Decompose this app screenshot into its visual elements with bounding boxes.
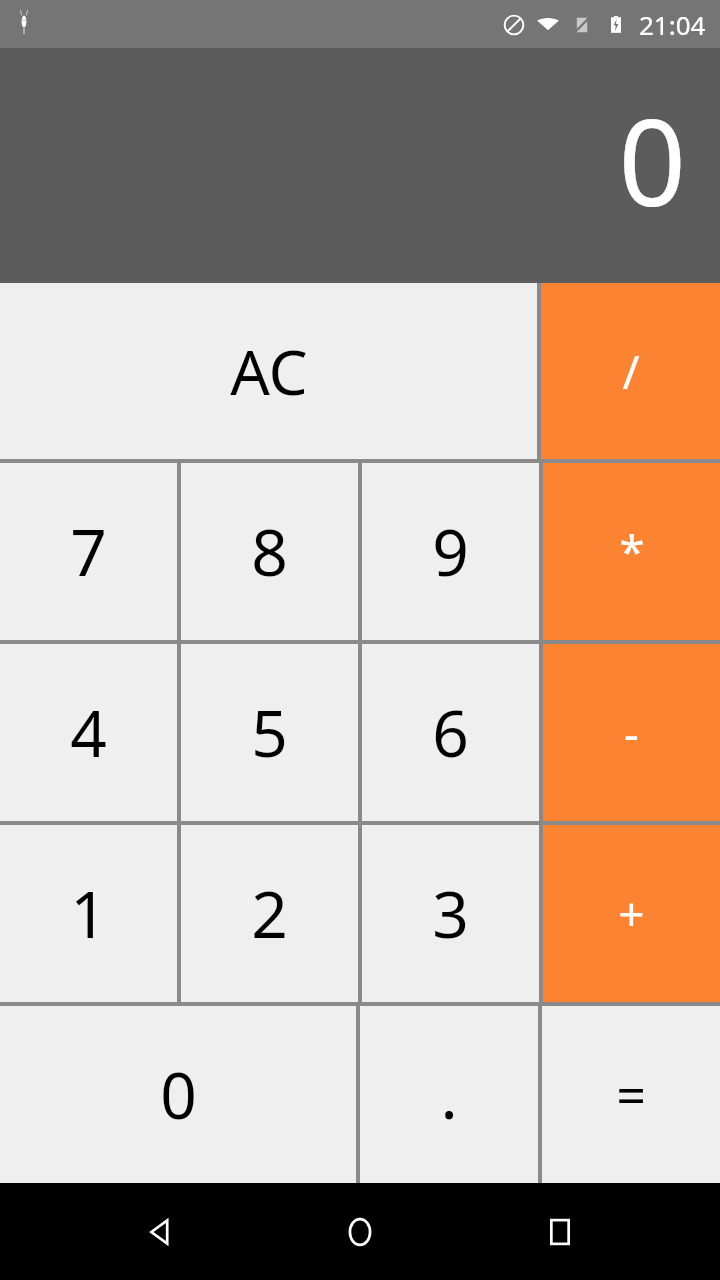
button[interactable]: - [543, 644, 720, 821]
button[interactable]: 5 [181, 644, 358, 821]
staticText: + [618, 882, 645, 945]
staticText: . [440, 1051, 458, 1138]
staticText: 3 [432, 870, 469, 957]
button[interactable]: 2 [181, 825, 358, 1002]
staticText: 7 [70, 508, 107, 595]
button[interactable]: 4 [0, 644, 177, 821]
button[interactable]: Home [320, 1192, 400, 1272]
button[interactable]: / [541, 283, 720, 459]
staticText: 6 [432, 689, 469, 776]
staticText: 1 [70, 870, 107, 957]
button[interactable]: Back [120, 1192, 200, 1272]
button[interactable]: + [543, 825, 720, 1002]
staticText: 0 [160, 1051, 197, 1138]
button[interactable]: 0 [0, 1006, 356, 1183]
button[interactable]: AC [0, 283, 537, 459]
button[interactable]: * [543, 463, 720, 640]
staticText: 4 [70, 689, 107, 776]
staticText: AC [230, 329, 308, 413]
staticText: = [616, 1059, 646, 1130]
staticText: 9 [432, 508, 469, 595]
staticText: / [622, 340, 640, 403]
staticText: - [624, 701, 639, 764]
staticText: 2 [251, 870, 288, 957]
staticText: 0 [618, 80, 686, 241]
button[interactable]: 7 [0, 463, 177, 640]
button[interactable]: = [542, 1006, 720, 1183]
button[interactable]: Recent apps [520, 1192, 600, 1272]
button[interactable]: 1 [0, 825, 177, 1002]
button[interactable]: . [360, 1006, 538, 1183]
staticText: 5 [251, 689, 288, 776]
staticText: * [619, 520, 645, 583]
button[interactable]: 9 [362, 463, 539, 640]
staticText: 8 [251, 508, 288, 595]
button[interactable]: 6 [362, 644, 539, 821]
button[interactable]: 3 [362, 825, 539, 1002]
button[interactable]: 8 [181, 463, 358, 640]
staticText: 21:04 [639, 7, 706, 42]
